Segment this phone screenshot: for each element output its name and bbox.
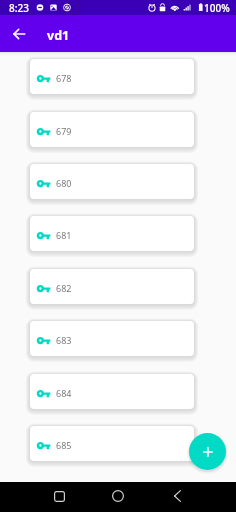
- staticText: 8:23: [9, 1, 29, 15]
- staticText: 679: [56, 125, 72, 137]
- button[interactable]: 684: [30, 374, 194, 409]
- staticText: 682: [56, 282, 72, 294]
- staticText: 683: [56, 334, 72, 346]
- button[interactable]: 682: [30, 269, 194, 304]
- staticText: 100%: [204, 1, 230, 15]
- button[interactable]: 680: [30, 164, 194, 199]
- staticText: 685: [56, 439, 72, 451]
- button[interactable]: Back: [163, 481, 191, 511]
- button[interactable]: Add: [189, 433, 226, 470]
- button[interactable]: 683: [30, 321, 194, 356]
- button[interactable]: 679: [30, 112, 194, 147]
- button[interactable]: Recents: [45, 481, 73, 511]
- staticText: 678: [56, 72, 72, 84]
- button[interactable]: Back: [6, 15, 31, 52]
- staticText: 684: [56, 387, 72, 399]
- button[interactable]: 685: [30, 426, 194, 461]
- button[interactable]: 681: [30, 216, 194, 251]
- staticText: 680: [56, 177, 72, 189]
- button[interactable]: Home: [104, 481, 132, 511]
- button[interactable]: 678: [30, 59, 194, 94]
- staticText: 681: [56, 229, 72, 241]
- staticText: vd1: [47, 27, 70, 44]
